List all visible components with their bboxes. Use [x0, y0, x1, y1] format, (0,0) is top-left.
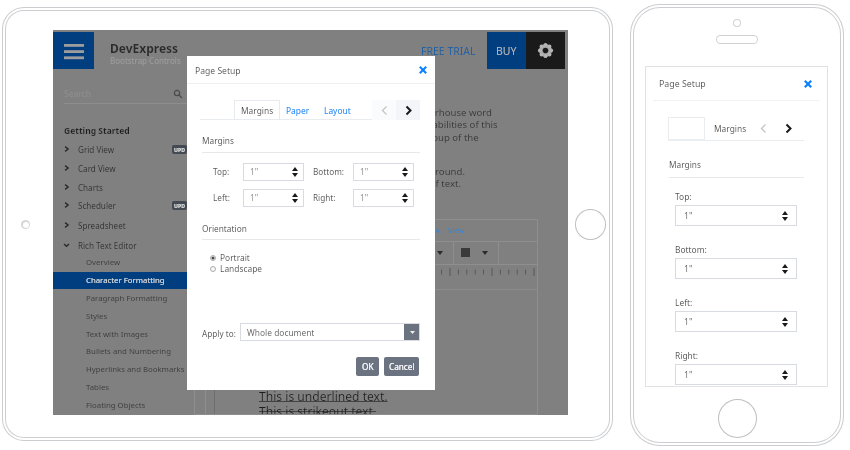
- staticText: Rich Text Editor lets you bring content …: [205, 106, 492, 119]
- button[interactable]: Rich Text Editor: [64, 236, 187, 254]
- staticText: Bootstrap Controls: [110, 55, 181, 66]
- staticText: Charts: [78, 182, 103, 193]
- staticText: UPD: [174, 146, 185, 153]
- button[interactable]: Home: [575, 209, 606, 240]
- staticText: processor to your web application. Explo…: [205, 118, 498, 131]
- staticText: Styles: [86, 311, 108, 322]
- button[interactable]: 1": [353, 189, 414, 207]
- button[interactable]: 1": [675, 311, 797, 332]
- button[interactable]: Settings: [526, 32, 565, 69]
- staticText: 1": [360, 166, 369, 178]
- staticText: 1": [250, 166, 259, 178]
- button[interactable]: Hyperlinks and Bookmarks: [53, 361, 188, 378]
- staticText: File: [204, 225, 216, 235]
- button[interactable]: Previous tab: [754, 117, 772, 140]
- button[interactable]: 1": [243, 163, 304, 181]
- button[interactable]: Scheduler: [64, 196, 187, 214]
- staticText: Apply the following formatting for text:…: [205, 153, 432, 166]
- button[interactable]: Margins: [234, 100, 280, 120]
- staticText: Search: [64, 88, 91, 100]
- button[interactable]: Whole document: [240, 323, 420, 341]
- button[interactable]: Portrait: [210, 252, 250, 263]
- staticText: Margins: [202, 135, 234, 146]
- button[interactable]: Paragraph Formatting: [53, 290, 188, 307]
- button[interactable]: Overview: [53, 254, 188, 271]
- button[interactable]: Layout: [320, 100, 354, 120]
- staticText: Scheduler: [78, 200, 116, 211]
- staticText: Paragraph Formatting: [86, 293, 168, 304]
- button[interactable]: Floating Objects: [53, 397, 188, 414]
- staticText: Bullets and Numbering: [86, 346, 171, 357]
- button[interactable]: Text with Images: [53, 326, 188, 343]
- staticText: 1": [684, 316, 693, 328]
- staticText: 1": [684, 369, 693, 381]
- button[interactable]: Bullets and Numbering: [53, 343, 188, 360]
- button[interactable]: Grid View: [64, 140, 187, 158]
- button[interactable]: 1": [675, 205, 797, 226]
- staticText: 1": [684, 210, 693, 222]
- button[interactable]: Close: [416, 63, 430, 77]
- staticText: Top:: [675, 191, 692, 202]
- staticText: group of the: [420, 131, 479, 144]
- staticText: Left:: [213, 192, 230, 203]
- staticText: Hyperlinks and Bookmarks: [86, 364, 185, 375]
- button[interactable]: Previous tab: [372, 100, 396, 120]
- staticText: Portrait: [220, 252, 250, 263]
- staticText: Also, you may change case of a sentence …: [205, 177, 462, 190]
- staticText: 1": [360, 192, 369, 204]
- button[interactable]: OK: [356, 357, 379, 376]
- staticText: Left:: [675, 297, 693, 308]
- button[interactable]: BUY: [487, 32, 526, 69]
- staticText: Home: [224, 225, 245, 235]
- button[interactable]: Spreadsheet: [64, 216, 187, 234]
- button[interactable]: File: [204, 225, 216, 235]
- button[interactable]: Menu: [53, 32, 94, 69]
- button[interactable]: Margins: [705, 117, 756, 140]
- button[interactable]: Home: [224, 225, 245, 235]
- button[interactable]: Review: [416, 225, 440, 235]
- staticText: This is strikeout text.: [259, 403, 377, 415]
- staticText: Grid View: [78, 144, 115, 155]
- staticText: Paper: [286, 105, 310, 116]
- staticText: DevExpress: [110, 40, 179, 56]
- button[interactable]: Charts: [64, 178, 187, 196]
- staticText: Bottom:: [675, 244, 707, 255]
- button[interactable]: Character Formatting: [53, 272, 188, 289]
- staticText: Review: [416, 225, 440, 235]
- button[interactable]: 1": [675, 364, 797, 385]
- staticText: Tables: [86, 382, 110, 393]
- staticText: Apply to:: [202, 328, 236, 339]
- button[interactable]: Landscape: [210, 263, 263, 274]
- button[interactable]: View: [448, 225, 464, 235]
- button[interactable]: FREE TRIAL: [419, 32, 477, 69]
- staticText: View: [448, 225, 464, 235]
- button[interactable]: 1": [353, 163, 414, 181]
- staticText: Page Setup: [195, 65, 241, 77]
- button[interactable]: Paper: [283, 100, 313, 120]
- staticText: Top:: [213, 166, 230, 177]
- staticText: Whole document: [247, 327, 315, 338]
- staticText: Right:: [313, 192, 336, 203]
- staticText: Text with Images: [86, 329, 149, 340]
- staticText: Home ribbon tab.: [205, 143, 285, 156]
- button[interactable]: Close: [801, 77, 815, 91]
- button[interactable]: Home: [718, 399, 757, 438]
- button[interactable]: 1": [675, 258, 797, 279]
- button[interactable]: Tables: [53, 379, 188, 396]
- button[interactable]: Cancel: [384, 357, 419, 376]
- button[interactable]: Styles: [53, 308, 188, 325]
- button[interactable]: Card View: [64, 159, 187, 177]
- staticText: Landscape: [220, 263, 263, 274]
- button[interactable]: Next tab: [779, 117, 797, 140]
- button[interactable]: 1": [243, 189, 304, 207]
- button[interactable]: Next tab: [396, 100, 420, 120]
- staticText: underline, strikeout, change background …: [205, 165, 465, 178]
